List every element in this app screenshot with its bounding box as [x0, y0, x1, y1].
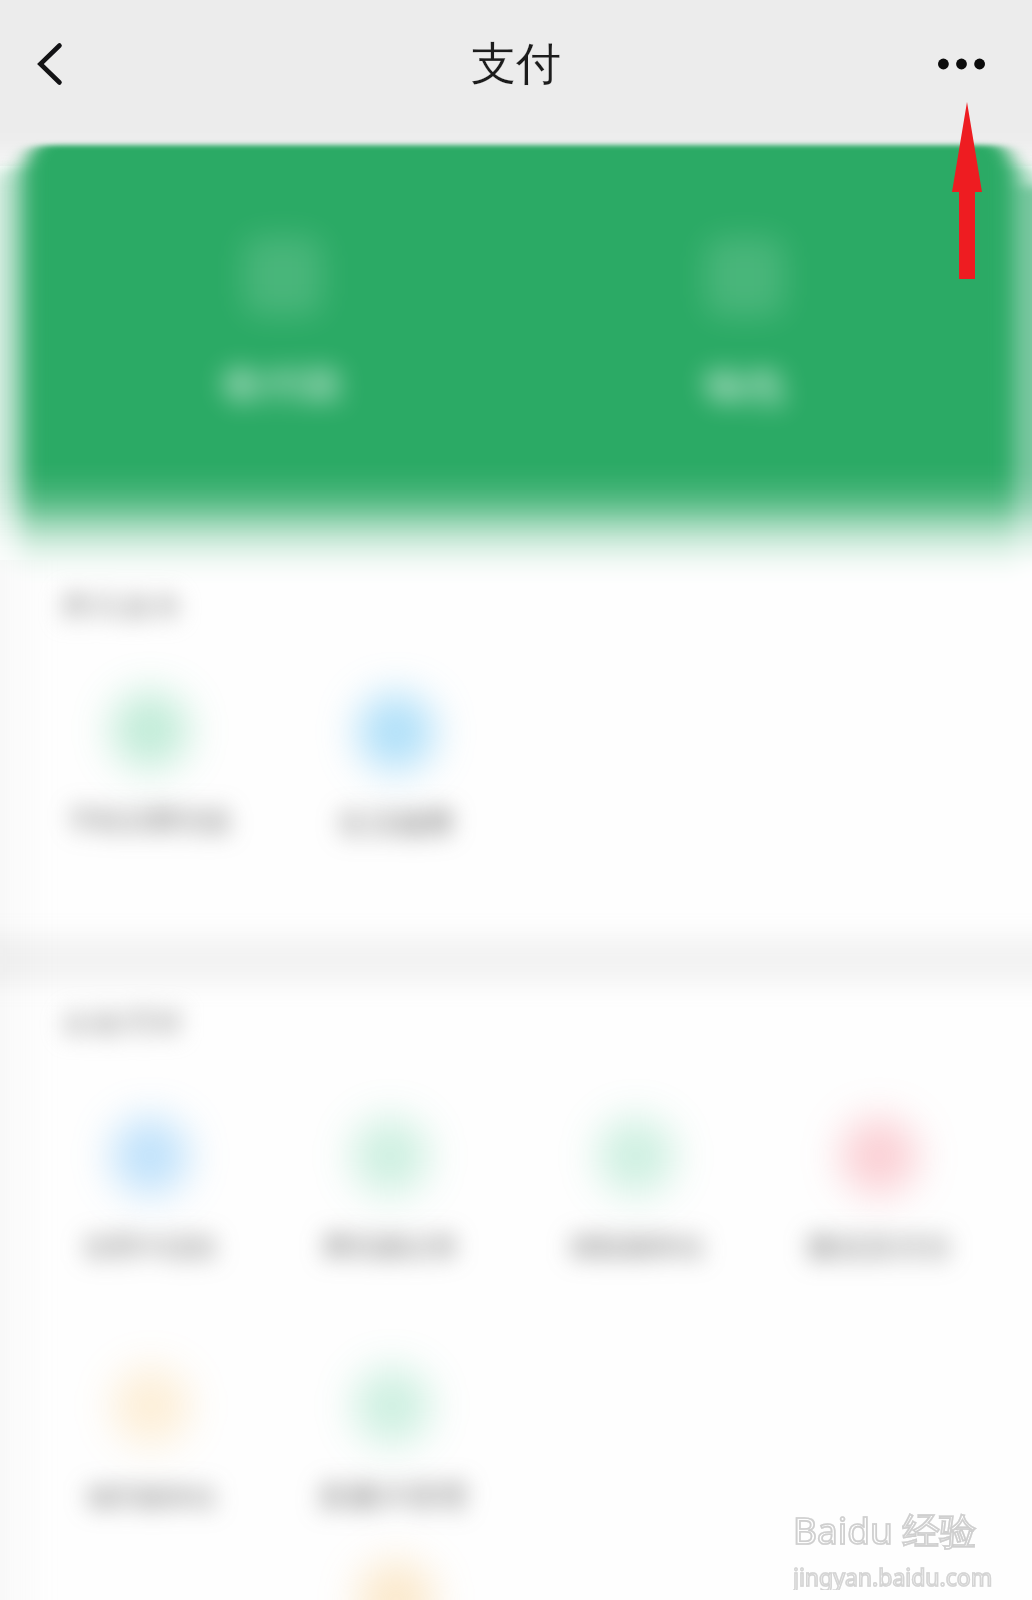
staticText: 亲属卡管理: [317, 1478, 467, 1516]
staticText: jingyan.baidu.com: [793, 1561, 993, 1590]
staticText: 微信支付分: [807, 1229, 952, 1266]
button[interactable]: Back: [0, 10, 108, 118]
button[interactable]: 收付款: [133, 325, 433, 445]
button[interactable]: 亲属卡管理: [232, 1437, 552, 1557]
staticText: 手机话费充值: [69, 804, 231, 838]
button[interactable]: 生活缴费: [236, 763, 556, 883]
staticText: 生活缴费: [338, 805, 454, 842]
staticText: Baidu 经验: [793, 1504, 977, 1555]
staticText: 支付: [471, 36, 561, 93]
button[interactable]: 微信支付分: [719, 1187, 1032, 1307]
staticText: 收付款: [222, 359, 345, 411]
button[interactable]: 钱包: [595, 327, 895, 447]
staticText: 金融理财: [60, 1003, 184, 1042]
button[interactable]: 腾讯微证券: [230, 1187, 550, 1307]
button[interactable]: [26, 145, 1012, 620]
button[interactable]: 信用卡还款: [0, 1187, 310, 1307]
button[interactable]: 手机话费充值: [0, 761, 310, 881]
staticText: 信用卡还款: [83, 1230, 218, 1264]
staticText: 钱包: [704, 361, 786, 413]
staticText: 城市服务站: [86, 1481, 216, 1514]
button[interactable]: More options: [907, 10, 1015, 118]
staticText: 腾讯服务: [60, 587, 184, 626]
button[interactable]: 城市服务站: [0, 1437, 311, 1557]
staticText: 腾讯微证券: [323, 1230, 458, 1264]
button[interactable]: 保险服务站: [476, 1187, 796, 1307]
staticText: 保险服务站: [569, 1230, 704, 1264]
